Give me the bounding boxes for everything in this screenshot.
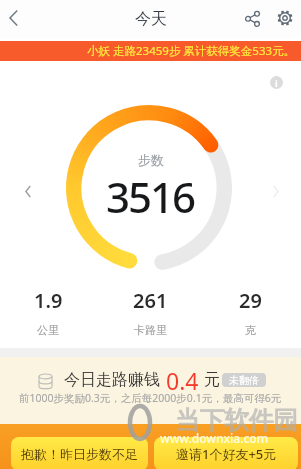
staticText: 抱歉！昨日步数不足 xyxy=(21,446,138,462)
staticText: 未翻倍 xyxy=(229,374,259,387)
staticText: 邀请1个好友+5元 xyxy=(176,445,277,463)
button[interactable]: 今日走路赚钱 xyxy=(0,357,301,424)
staticText: 0.4 xyxy=(166,365,199,396)
button[interactable] xyxy=(238,4,266,32)
staticText: 261 xyxy=(133,287,168,314)
staticText: 步数 xyxy=(138,152,164,168)
button[interactable] xyxy=(14,177,42,205)
staticText: 当下软件园 xyxy=(175,405,298,436)
staticText: 前1000步奖励0.3元，之后每2000步0.1元，最高可得6元 xyxy=(19,391,282,405)
staticText: 今天 xyxy=(135,9,167,29)
staticText: 今日走路赚钱 xyxy=(64,370,160,390)
button[interactable]: 邀请1个好友+5元 xyxy=(154,437,298,469)
staticText: i xyxy=(275,77,278,89)
button[interactable]: 抱歉！昨日步数不足 xyxy=(11,437,148,469)
button[interactable]: i xyxy=(270,76,283,89)
staticText: 克 xyxy=(245,323,256,337)
button[interactable]: 小妖 走路23459步 累计获得奖金533元。 xyxy=(0,41,301,61)
staticText: 3516 xyxy=(106,168,195,225)
button[interactable] xyxy=(0,4,28,32)
staticText: 公里 xyxy=(37,323,59,337)
staticText: 1.9 xyxy=(34,287,63,314)
staticText: 卡路里 xyxy=(134,323,167,337)
staticText: 小妖 走路23459步 累计获得奖金533元。 xyxy=(87,43,296,59)
staticText: www.downxia.com xyxy=(160,430,269,446)
staticText: 元 xyxy=(204,370,220,390)
button[interactable] xyxy=(271,4,299,32)
staticText: 29 xyxy=(239,287,262,314)
